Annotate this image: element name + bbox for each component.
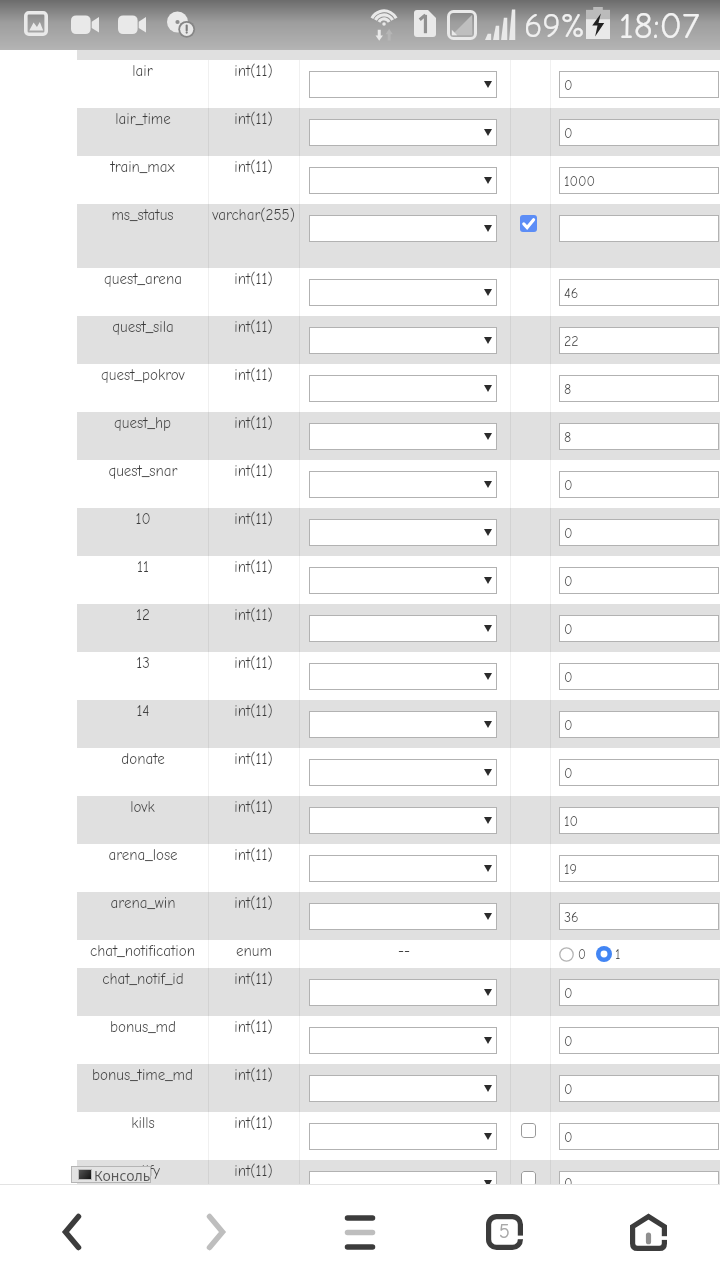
button[interactable]: Function for 10 <box>309 519 497 546</box>
staticText: 22 <box>564 333 579 349</box>
staticText: int(11) <box>234 1114 273 1131</box>
button[interactable]: Function for 11 <box>309 567 497 594</box>
staticText: bonus_time_md <box>92 1066 193 1083</box>
staticText: train_max <box>110 158 175 175</box>
staticText: 0 <box>564 717 573 733</box>
staticText: 0 <box>564 1081 573 1097</box>
staticText: varchar(255) <box>212 206 295 223</box>
button[interactable]: 0 <box>559 615 719 642</box>
button[interactable]: Home <box>576 1184 720 1280</box>
button[interactable]: Function for quest_sila <box>309 327 497 354</box>
staticText: 0 <box>564 77 573 93</box>
button[interactable]: 0 <box>559 519 719 546</box>
staticText: 8 <box>564 381 572 397</box>
button[interactable]: 22 <box>559 327 719 354</box>
staticText: donate <box>121 750 165 767</box>
button[interactable]: 0 <box>559 1027 719 1054</box>
button[interactable]: Function for lovk <box>309 807 497 834</box>
staticText: 0 <box>564 573 573 589</box>
button[interactable]: 10 <box>559 807 719 834</box>
button[interactable]: Tabs <box>432 1184 576 1280</box>
button[interactable]: 0 <box>559 1171 719 1195</box>
button[interactable]: Function for ms_status <box>309 215 497 242</box>
staticText: int(11) <box>234 62 273 79</box>
button[interactable]: Null ms_status <box>520 215 537 232</box>
staticText: int(11) <box>234 110 273 127</box>
button[interactable]: Function for quest_arena <box>309 279 497 306</box>
button[interactable]: Function for quest_hp <box>309 423 497 450</box>
button[interactable]: 0 <box>559 71 719 98</box>
staticText: 0 <box>578 947 586 962</box>
button[interactable]: 0 <box>559 1075 719 1102</box>
staticText: int(11) <box>234 462 273 479</box>
staticText: 0 <box>564 525 573 541</box>
staticText: 0 <box>564 621 573 637</box>
staticText: int(11) <box>234 158 273 175</box>
button[interactable]: 0 <box>559 663 719 690</box>
staticText: int(11) <box>234 846 273 863</box>
button[interactable]: 0 <box>559 119 719 146</box>
button[interactable]: Function for chat_notif_id <box>309 979 497 1006</box>
button[interactable]: Function for lair_time <box>309 119 497 146</box>
button[interactable]: Function for 13 <box>309 663 497 690</box>
button[interactable]: 0 <box>559 1123 719 1150</box>
button[interactable]: Function for bonus_time_md <box>309 1075 497 1102</box>
staticText: ms_status <box>111 206 174 223</box>
button[interactable]: Function for donate <box>309 759 497 786</box>
button[interactable]: Function for notify <box>309 1171 497 1195</box>
staticText: 0 <box>564 1033 573 1049</box>
staticText: quest_arena <box>104 270 182 287</box>
button[interactable]: 46 <box>559 279 719 306</box>
staticText: int(11) <box>234 1066 273 1083</box>
button[interactable]: Function for arena_lose <box>309 855 497 882</box>
staticText: lair_time <box>115 110 171 127</box>
button[interactable]: 19 <box>559 855 719 882</box>
staticText: quest_hp <box>114 414 171 431</box>
staticText: 0 <box>564 985 573 1001</box>
staticText: -- <box>398 941 411 958</box>
button[interactable] <box>559 215 719 242</box>
button[interactable]: Function for arena_win <box>309 903 497 930</box>
button[interactable]: 1000 <box>559 167 719 194</box>
button[interactable]: 0 <box>559 940 621 968</box>
button[interactable]: Function for quest_snar <box>309 471 497 498</box>
button[interactable]: Function for bonus_md <box>309 1027 497 1054</box>
button[interactable]: Function for quest_pokrov <box>309 375 497 402</box>
staticText: 0 <box>564 669 573 685</box>
button[interactable]: 8 <box>559 375 719 402</box>
button[interactable]: 0 <box>559 979 719 1006</box>
button[interactable]: 36 <box>559 903 719 930</box>
button[interactable]: Null kills <box>521 1123 536 1138</box>
staticText: enum <box>236 942 272 959</box>
staticText: int(11) <box>234 702 273 719</box>
staticText: lair <box>132 62 153 79</box>
button[interactable]: Back <box>0 1184 144 1280</box>
staticText: int(11) <box>234 414 273 431</box>
button[interactable]: Null notify <box>521 1171 536 1186</box>
staticText: 8 <box>564 429 572 445</box>
button[interactable]: Function for lair <box>309 71 497 98</box>
staticText: 14 <box>136 702 150 719</box>
button[interactable]: Консоль <box>71 1166 151 1183</box>
staticText: kills <box>131 1114 155 1131</box>
button[interactable]: Forward <box>144 1184 288 1280</box>
staticText: int(11) <box>234 270 273 287</box>
button[interactable]: Function for 14 <box>309 711 497 738</box>
staticText: 5 <box>499 1220 510 1243</box>
button[interactable]: Function for 12 <box>309 615 497 642</box>
button[interactable]: 8 <box>559 423 719 450</box>
button[interactable]: 0 <box>559 567 719 594</box>
button[interactable]: 0 <box>559 711 719 738</box>
button[interactable]: Menu <box>288 1184 432 1280</box>
staticText: bonus_md <box>110 1018 176 1035</box>
staticText: 12 <box>136 606 150 623</box>
staticText: 1 <box>615 946 621 962</box>
button[interactable]: Function for kills <box>309 1123 497 1150</box>
staticText: int(11) <box>234 894 273 911</box>
staticText: Консоль <box>94 1166 151 1183</box>
staticText: notify <box>125 1162 160 1179</box>
button[interactable]: 0 <box>559 471 719 498</box>
button[interactable]: 0 <box>559 759 719 786</box>
button[interactable]: Function for train_max <box>309 167 497 194</box>
staticText: 46 <box>564 285 579 301</box>
